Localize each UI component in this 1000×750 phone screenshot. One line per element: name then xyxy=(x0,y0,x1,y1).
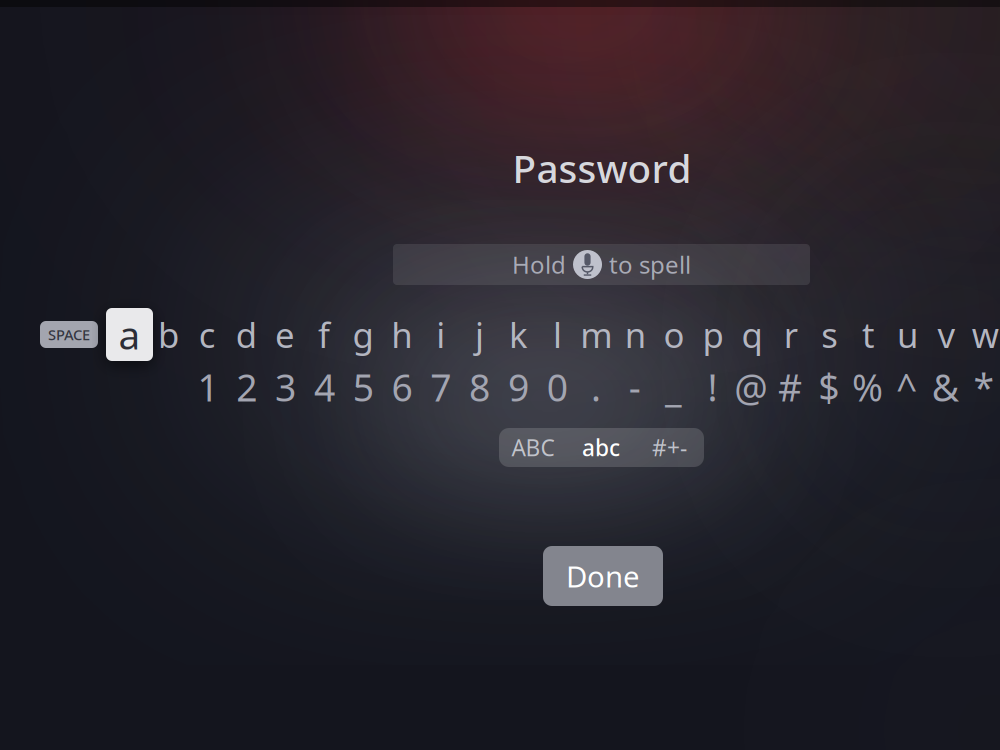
staticText: 0 xyxy=(547,362,568,412)
button[interactable]: * xyxy=(965,364,1000,410)
staticText: . xyxy=(591,362,601,412)
staticText: - xyxy=(629,362,641,412)
button[interactable]: s xyxy=(811,308,849,361)
staticText: 7 xyxy=(430,362,451,412)
button[interactable]: v xyxy=(927,308,965,361)
button[interactable]: 4 xyxy=(305,364,343,410)
staticText: n xyxy=(625,311,646,357)
button[interactable]: e xyxy=(266,308,304,361)
button[interactable]: n xyxy=(616,308,654,361)
staticText: e xyxy=(275,311,295,357)
staticText: ^ xyxy=(896,362,917,412)
button[interactable]: - xyxy=(616,364,654,410)
staticText: t xyxy=(862,311,875,357)
staticText: p xyxy=(702,311,723,357)
button[interactable]: 8 xyxy=(461,364,499,410)
staticText: # xyxy=(778,362,802,412)
staticText: #+- xyxy=(652,432,687,462)
staticText: r xyxy=(784,311,798,357)
staticText: to spell xyxy=(609,249,691,280)
button[interactable]: % xyxy=(849,364,887,410)
button[interactable]: Done xyxy=(543,546,663,606)
staticText: d xyxy=(236,311,257,357)
staticText: * xyxy=(973,362,994,412)
button[interactable]: # xyxy=(771,364,809,410)
staticText: s xyxy=(821,311,838,357)
button[interactable]: l xyxy=(538,308,576,361)
staticText: g xyxy=(352,311,373,357)
button[interactable]: j xyxy=(461,308,499,361)
button[interactable]: c xyxy=(188,308,226,361)
staticText: Password xyxy=(512,142,691,194)
button[interactable]: w xyxy=(966,308,1000,361)
button[interactable]: 2 xyxy=(228,364,266,410)
staticText: $ xyxy=(818,362,839,412)
staticText: SPACE xyxy=(48,325,90,344)
staticText: f xyxy=(318,311,330,357)
button[interactable]: k xyxy=(499,308,537,361)
staticText: 4 xyxy=(314,362,335,412)
button[interactable]: abc xyxy=(567,428,635,467)
staticText: a xyxy=(118,309,140,360)
staticText: w xyxy=(972,311,999,357)
button[interactable]: u xyxy=(888,308,926,361)
staticText: 8 xyxy=(469,362,490,412)
staticText: u xyxy=(897,311,918,357)
staticText: o xyxy=(664,311,685,357)
button[interactable]: SPACE xyxy=(40,321,98,348)
button[interactable]: h xyxy=(383,308,421,361)
staticText: abc xyxy=(582,432,620,462)
button[interactable]: @ xyxy=(732,364,770,410)
button[interactable]: f xyxy=(305,308,343,361)
staticText: b xyxy=(158,311,179,357)
staticText: & xyxy=(932,362,959,412)
button[interactable]: & xyxy=(926,364,964,410)
button[interactable]: Hold xyxy=(393,244,810,285)
staticText: j xyxy=(475,311,484,357)
button[interactable]: g xyxy=(344,308,382,361)
button[interactable]: . xyxy=(577,364,615,410)
staticText: q xyxy=(741,311,762,357)
staticText: h xyxy=(391,311,412,357)
staticText: Hold xyxy=(512,249,566,280)
button[interactable]: _ xyxy=(655,364,693,410)
button[interactable]: 6 xyxy=(383,364,421,410)
button[interactable]: o xyxy=(655,308,693,361)
button[interactable]: ! xyxy=(693,364,731,410)
staticText: 9 xyxy=(508,362,529,412)
staticText: i xyxy=(436,311,445,357)
staticText: v xyxy=(937,311,955,357)
staticText: 3 xyxy=(275,362,296,412)
staticText: Done xyxy=(566,556,640,595)
button[interactable]: r xyxy=(772,308,810,361)
staticText: ! xyxy=(707,362,717,412)
staticText: l xyxy=(553,311,562,357)
button[interactable]: 0 xyxy=(538,364,576,410)
button[interactable]: t xyxy=(850,308,888,361)
button[interactable]: ^ xyxy=(887,364,925,410)
staticText: k xyxy=(509,311,528,357)
staticText: _ xyxy=(665,362,682,412)
staticText: m xyxy=(580,311,612,357)
button[interactable]: a xyxy=(106,308,153,361)
staticText: 6 xyxy=(391,362,412,412)
button[interactable]: 5 xyxy=(344,364,382,410)
button[interactable]: p xyxy=(694,308,732,361)
button[interactable]: #+- xyxy=(635,428,704,467)
button[interactable]: m xyxy=(577,308,615,361)
button[interactable]: ABC xyxy=(499,428,567,467)
staticText: % xyxy=(852,362,883,412)
staticText: 2 xyxy=(236,362,257,412)
button[interactable]: 7 xyxy=(422,364,460,410)
button[interactable]: 1 xyxy=(189,364,227,410)
staticText: @ xyxy=(734,362,768,412)
button[interactable]: b xyxy=(149,308,187,361)
button[interactable]: i xyxy=(422,308,460,361)
staticText: 1 xyxy=(197,362,218,412)
button[interactable]: q xyxy=(733,308,771,361)
button[interactable]: 9 xyxy=(499,364,537,410)
button[interactable]: $ xyxy=(810,364,848,410)
staticText: ABC xyxy=(511,432,554,462)
button[interactable]: d xyxy=(227,308,265,361)
button[interactable]: 3 xyxy=(267,364,305,410)
